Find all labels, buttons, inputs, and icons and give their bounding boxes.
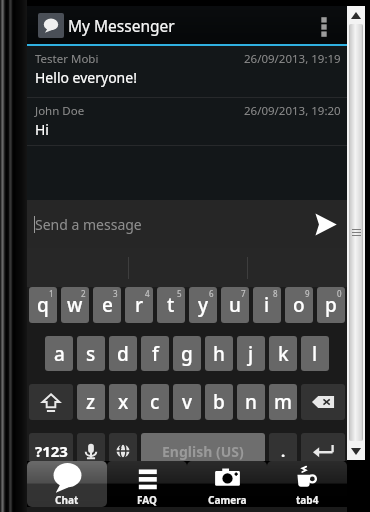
button[interactable]: John Doe [27,98,347,146]
staticText: 3 [113,288,118,299]
button[interactable]: m [269,384,297,420]
button[interactable]: q [29,287,57,323]
button[interactable]: Shift [29,384,73,420]
button[interactable]: More options [314,6,345,44]
button[interactable]: ?123 [29,433,73,469]
staticText: w [67,292,83,318]
button[interactable]: x [109,384,137,420]
button[interactable]: Chat [27,461,107,507]
button[interactable]: n [237,384,265,420]
button[interactable]: English (US) [141,433,265,469]
button[interactable]: o [285,287,313,323]
button[interactable]: v [173,384,201,420]
button[interactable]: Change language [109,433,137,469]
staticText: 5 [177,288,182,299]
button[interactable]: a [45,336,73,371]
button[interactable]: p [317,287,345,323]
button[interactable]: u [221,287,249,323]
button[interactable]: s [77,336,105,371]
staticText: 6 [209,288,214,299]
staticText: i [264,292,270,318]
staticText: f [152,341,159,367]
staticText: 1 [49,288,54,299]
staticText: c [150,389,160,415]
staticText: FAQ [137,493,157,507]
staticText: My Messenger [68,15,175,36]
staticText: John Doe [35,103,85,119]
staticText: Tester Mobi [35,51,99,67]
staticText: h [213,341,225,367]
button[interactable]: Send [305,207,339,241]
button[interactable]: f [141,336,169,371]
staticText: 26/09/2013, 19:20 [244,103,341,119]
staticText: 2 [81,288,86,299]
staticText: p [325,292,337,318]
staticText: o [293,292,305,318]
button[interactable]: Voice input [77,433,105,469]
staticText: tab4 [296,493,319,507]
staticText: k [278,341,289,367]
staticText: a [54,341,65,367]
staticText: n [245,389,257,415]
staticText: 7 [241,288,246,299]
button[interactable]: d [109,336,137,371]
button[interactable]: l [301,336,329,371]
staticText: l [312,341,318,367]
staticText: z [86,389,96,415]
button[interactable]: c [141,384,169,420]
staticText: s [86,341,96,367]
staticText: 0 [337,288,342,299]
staticText: 26/09/2013, 19:19 [244,51,341,67]
staticText: e [102,292,113,318]
staticText: English (US) [162,442,244,461]
staticText: r [135,292,144,318]
button[interactable]: tab4 [267,461,347,507]
button[interactable]: h [205,336,233,371]
button[interactable]: b [205,384,233,420]
button[interactable]: w [61,287,89,323]
button[interactable]: Enter [301,433,345,469]
staticText: v [182,389,193,415]
staticText: m [274,389,292,415]
staticText: t [167,292,175,318]
staticText: d [117,341,129,367]
staticText: Hi [35,120,49,139]
button[interactable]: r [125,287,153,323]
staticText: q [37,292,49,318]
button[interactable]: t [157,287,185,323]
staticText: y [198,292,209,318]
staticText: Hello everyone! [35,68,137,87]
button[interactable]: j [237,336,265,371]
staticText: b [213,389,225,415]
staticText: 4 [145,288,150,299]
button[interactable]: i [253,287,281,323]
button[interactable]: Camera [187,461,267,507]
button[interactable]: FAQ [107,461,187,507]
button[interactable]: Backspace [301,384,345,420]
staticText: Chat [55,493,79,507]
staticText: u [229,292,241,318]
staticText: g [181,341,193,367]
staticText: j [248,341,254,367]
button[interactable]: g [173,336,201,371]
staticText: Send a message [35,215,142,234]
staticText: 8 [273,288,278,299]
button[interactable]: . [269,433,297,469]
button[interactable]: Tester Mobi [27,46,347,98]
staticText: ?123 [35,441,68,461]
staticText: . [281,441,286,461]
staticText: Camera [208,493,247,507]
button[interactable]: e [93,287,121,323]
staticText: x [118,389,129,415]
button[interactable]: y [189,287,217,323]
staticText: 9 [305,288,310,299]
button[interactable]: k [269,336,297,371]
button[interactable]: z [77,384,105,420]
